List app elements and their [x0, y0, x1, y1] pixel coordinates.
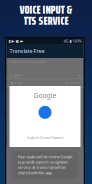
staticText: VOICE INPUT &: [19, 0, 72, 19]
staticText: ▮ ▶ ◼ ▬: [8, 39, 23, 43]
staticText: Your audio will be sent to Google to pro…: [17, 154, 72, 175]
staticText: Translate Free: [9, 47, 44, 55]
staticText: 4G ▮ 100%: [63, 38, 81, 44]
staticText: ◈ Share: [65, 80, 79, 85]
staticText: Google: [33, 91, 56, 100]
staticText: English: [9, 73, 21, 78]
staticText: Enter text to translate: [9, 59, 45, 64]
staticText: TTS SERVICE: [23, 11, 68, 30]
staticText: English (United States): [26, 135, 63, 140]
staticText: ▾: [78, 73, 80, 77]
staticText: ◉ Copy: [10, 80, 23, 85]
